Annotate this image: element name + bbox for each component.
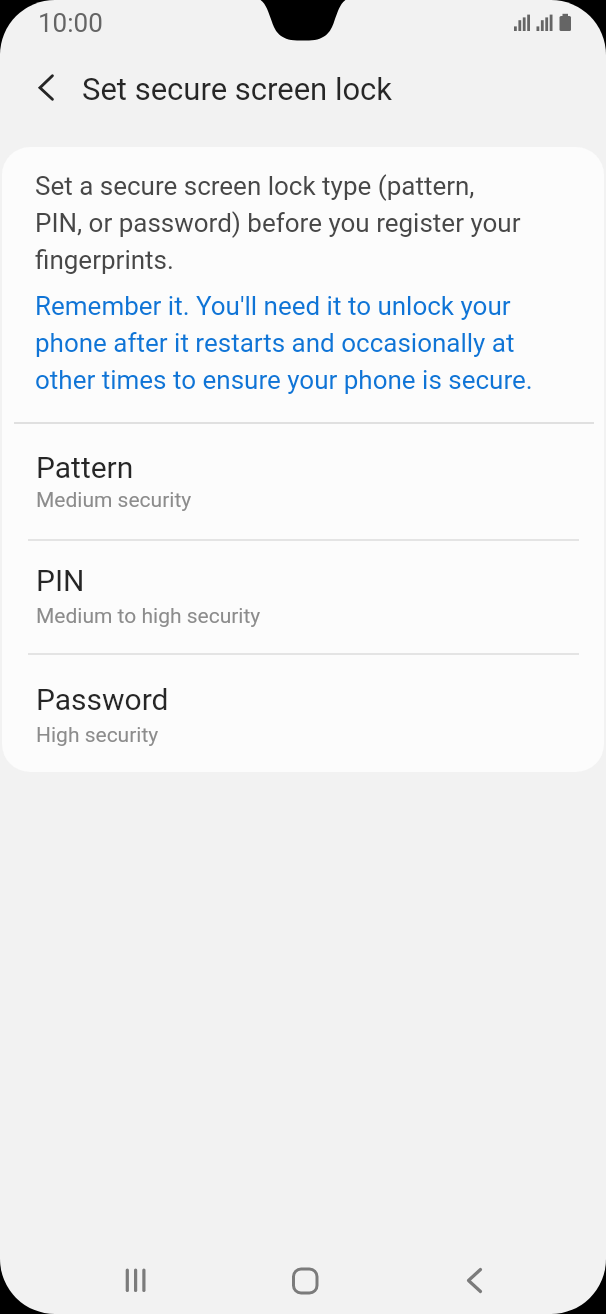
button[interactable]	[265, 1240, 345, 1314]
button[interactable]	[96, 1240, 176, 1314]
button[interactable]: PIN	[2, 539, 604, 653]
button[interactable]: Pattern	[2, 423, 604, 539]
button[interactable]	[20, 62, 76, 118]
staticText: Medium to high security	[36, 604, 261, 629]
staticText: High security	[36, 723, 159, 748]
staticText: Medium security	[36, 488, 192, 513]
staticText: Password	[36, 682, 169, 717]
staticText: Set a secure screen lock type (pattern, …	[35, 171, 521, 276]
button[interactable]: Password	[2, 653, 604, 772]
staticText: Pattern	[36, 450, 134, 485]
button[interactable]	[434, 1240, 514, 1314]
staticText: Set secure screen lock	[82, 71, 393, 107]
staticText: 10:00	[38, 8, 103, 38]
staticText: Remember it. You'll need it to unlock yo…	[35, 291, 533, 396]
staticText: PIN	[36, 563, 85, 598]
